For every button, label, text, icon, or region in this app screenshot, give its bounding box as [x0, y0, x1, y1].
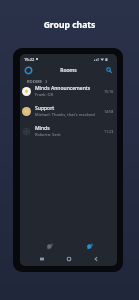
- button[interactable]: Minds Announcements: [20, 81, 117, 101]
- button[interactable]: Back: [93, 256, 98, 261]
- staticText: Minds Announcements: [35, 85, 91, 92]
- button[interactable]: Support: [20, 101, 117, 121]
- staticText: Frank: OK: [35, 92, 54, 97]
- button[interactable]: Rooms: [82, 238, 98, 254]
- staticText: 14:58: [104, 109, 114, 114]
- staticText: Group chats: [0, 19, 139, 31]
- button[interactable]: People: [42, 238, 58, 254]
- staticText: 11:23: [104, 129, 114, 134]
- staticText: 15:22: [24, 57, 35, 62]
- staticText: Support: [35, 105, 55, 112]
- staticText: ROOMS: [27, 79, 42, 84]
- staticText: 15:16: [104, 89, 114, 94]
- button[interactable]: Profile: [22, 64, 34, 76]
- staticText: Roberto: Sent: [35, 132, 61, 137]
- staticText: 3: [45, 79, 48, 84]
- staticText: Rooms: [20, 67, 117, 74]
- button[interactable]: Minds: [20, 121, 117, 141]
- button[interactable]: Home: [66, 256, 71, 261]
- button[interactable]: Recents: [39, 256, 44, 261]
- button[interactable]: Search: [103, 64, 115, 76]
- staticText: Michael: Thanks, that's resolved now.: [35, 112, 102, 117]
- staticText: Minds: [35, 125, 50, 132]
